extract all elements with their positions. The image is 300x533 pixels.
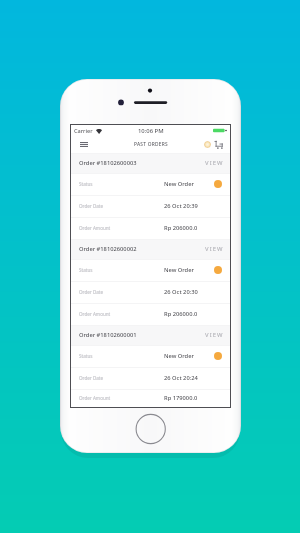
- staticText: Carrier: [74, 127, 93, 135]
- staticText: New Order: [164, 352, 194, 360]
- staticText: PAST ORDERS: [134, 141, 168, 148]
- staticText: VIEW: [205, 331, 224, 339]
- button[interactable]: Order #18102600001: [71, 325, 230, 345]
- staticText: Rp 206000.0: [164, 310, 198, 318]
- staticText: Status: [79, 267, 93, 273]
- staticText: 26 Oct 20:30: [164, 288, 198, 296]
- staticText: VIEW: [205, 159, 224, 167]
- staticText: 10:06 PM: [138, 127, 164, 135]
- button[interactable]: Shopping cart: [214, 138, 223, 151]
- staticText: Order Date: [79, 289, 104, 295]
- button[interactable]: Notifications: [204, 141, 211, 148]
- staticText: Order #18102600003: [79, 159, 137, 167]
- staticText: Order Amount: [79, 395, 111, 401]
- button[interactable]: Open navigation menu: [71, 136, 96, 153]
- button[interactable]: Order #18102600003: [71, 153, 230, 173]
- staticText: Order Date: [79, 375, 104, 381]
- staticText: Order #18102600002: [79, 245, 137, 253]
- button[interactable]: Order #18102600002: [71, 239, 230, 259]
- staticText: 26 Oct 20:24: [164, 374, 198, 382]
- staticText: Rp 179000.0: [164, 394, 198, 402]
- staticText: New Order: [164, 180, 194, 188]
- staticText: Order Date: [79, 203, 104, 209]
- staticText: New Order: [164, 266, 194, 274]
- staticText: 26 Oct 20:39: [164, 202, 198, 210]
- staticText: Order Amount: [79, 311, 111, 317]
- staticText: VIEW: [205, 245, 224, 253]
- staticText: Rp 206000.0: [164, 224, 198, 232]
- staticText: Order #18102600001: [79, 331, 137, 339]
- staticText: Status: [79, 181, 93, 187]
- staticText: Order Amount: [79, 225, 111, 231]
- staticText: Status: [79, 353, 93, 359]
